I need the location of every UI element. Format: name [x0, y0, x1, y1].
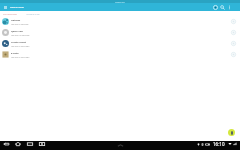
button[interactable]: E-Note [0, 49, 240, 60]
button[interactable]: Locate Select [0, 38, 240, 49]
staticText: Cortana Cloud [10, 6, 24, 9]
staticText: Last sync 5 hours ago [11, 56, 30, 58]
button[interactable]: Screenshot [39, 141, 45, 147]
staticText: Cortana sync [115, 1, 125, 3]
button[interactable]: Account options [230, 51, 237, 58]
button[interactable]: Account [212, 4, 219, 11]
button[interactable]: Back [3, 141, 9, 147]
staticText: Your cloud usage [3, 13, 17, 15]
staticText: Locate Select [11, 41, 27, 44]
button[interactable]: Account options [230, 18, 237, 25]
staticText: 12.8 GB of 15 GB [26, 13, 40, 15]
staticText: Quick VPN [11, 30, 23, 33]
button[interactable]: Account options [230, 29, 237, 36]
button[interactable]: Search [219, 4, 226, 11]
staticText: Last sync 2 mins ago [11, 23, 29, 25]
button[interactable]: Open navigation drawer [2, 4, 9, 11]
button[interactable]: More options [226, 4, 232, 10]
button[interactable]: Quick VPN [0, 27, 240, 38]
button[interactable]: Account options [230, 40, 237, 47]
button[interactable]: Add account [228, 129, 235, 136]
staticText: Last sync 18 mins ago [11, 34, 30, 36]
button[interactable]: Recent apps [27, 141, 33, 147]
staticText: Last sync 2 hours ago [11, 45, 30, 47]
staticText: E-Note [11, 52, 19, 55]
staticText: Hotmail [11, 19, 21, 22]
button[interactable]: Hotmail [0, 16, 240, 27]
button[interactable]: Home [15, 141, 21, 147]
staticText: 16:10 [213, 141, 225, 147]
